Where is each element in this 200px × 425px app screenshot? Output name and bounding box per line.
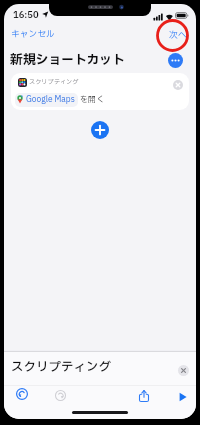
button[interactable]: 次へ — [167, 27, 189, 44]
staticText: 新規ショートカット — [10, 50, 125, 69]
button[interactable] — [53, 388, 67, 402]
button[interactable] — [137, 389, 151, 403]
staticText: を開く — [78, 94, 104, 106]
button[interactable] — [176, 363, 190, 377]
button[interactable] — [168, 53, 183, 68]
button[interactable] — [177, 392, 189, 403]
button[interactable] — [15, 387, 29, 401]
staticText: キャンセル — [11, 28, 55, 41]
staticText: 次へ — [169, 29, 187, 42]
staticText: 16:50 — [13, 8, 39, 21]
staticText: スクリプティング — [29, 77, 79, 86]
button[interactable]: スクリプティング — [11, 73, 189, 110]
staticText: Google Maps — [26, 94, 75, 106]
button[interactable] — [91, 121, 109, 139]
button[interactable]: Google Maps — [15, 93, 78, 107]
staticText: スクリプティング — [11, 358, 112, 377]
button[interactable]: キャンセル — [9, 26, 57, 43]
